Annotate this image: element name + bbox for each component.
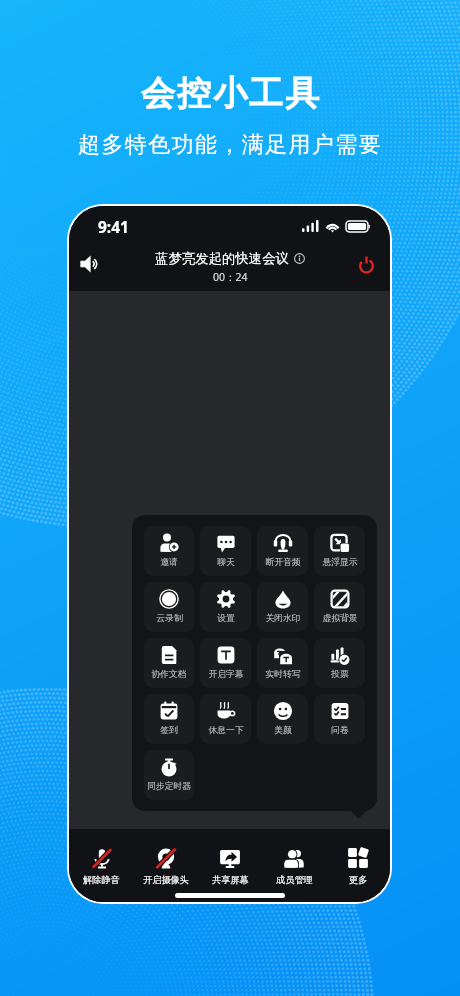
staticText: 关闭水印	[265, 613, 301, 624]
button[interactable]: Leave meeting	[351, 249, 381, 279]
staticText: 实时转写	[265, 669, 301, 680]
staticText: 蓝梦亮发起的快速会议	[155, 250, 289, 267]
staticText: 休息一下	[208, 725, 244, 736]
button[interactable]: 关闭水印	[257, 582, 308, 632]
staticText: 超多特色功能，满足用户需要	[78, 131, 383, 159]
staticText: 同步定时器	[147, 781, 191, 792]
button[interactable]: 实时转写	[257, 638, 308, 688]
button[interactable]: 问卷	[314, 694, 365, 744]
button[interactable]: 同步定时器	[144, 750, 194, 800]
button[interactable]: 邀请	[144, 526, 194, 576]
staticText: 问卷	[331, 725, 349, 736]
button[interactable]: 虚拟背景	[314, 582, 365, 632]
staticText: 设置	[217, 613, 235, 624]
staticText: 美颜	[274, 725, 292, 736]
button[interactable]: 成员管理	[262, 829, 326, 886]
staticText: 虚拟背景	[322, 613, 358, 624]
staticText: 更多	[349, 874, 368, 886]
button[interactable]: 美颜	[257, 694, 308, 744]
staticText: 投票	[331, 669, 349, 680]
staticText: 开启摄像头	[143, 874, 189, 886]
staticText: 9:41	[98, 216, 129, 237]
button[interactable]: 休息一下	[200, 694, 251, 744]
button[interactable]: 协作文档	[144, 638, 194, 688]
staticText: 云录制	[156, 613, 183, 624]
button[interactable]: 解除静音	[69, 829, 134, 886]
button[interactable]: 设置	[200, 582, 251, 632]
staticText: 签到	[160, 725, 178, 736]
staticText: 邀请	[160, 557, 178, 568]
button[interactable]: 签到	[144, 694, 194, 744]
staticText: 会控小工具	[140, 72, 320, 115]
button[interactable]: 云录制	[144, 582, 194, 632]
staticText: 聊天	[217, 557, 235, 568]
button[interactable]: 投票	[314, 638, 365, 688]
button[interactable]: 聊天	[200, 526, 251, 576]
button[interactable]: 开启摄像头	[134, 829, 198, 886]
button[interactable]: 更多	[326, 829, 390, 886]
button[interactable]: 开启字幕	[200, 638, 251, 688]
staticText: 开启字幕	[208, 669, 244, 680]
staticText: 解除静音	[83, 874, 120, 886]
button[interactable]: 共享屏幕	[198, 829, 262, 886]
staticText: 共享屏幕	[212, 874, 249, 886]
staticText: 悬浮显示	[322, 557, 358, 568]
staticText: 成员管理	[276, 874, 313, 886]
staticText: 协作文档	[151, 669, 187, 680]
staticText: 断开音频	[265, 557, 301, 568]
button[interactable]: 悬浮显示	[314, 526, 365, 576]
button[interactable]: Speaker	[74, 249, 104, 279]
staticText: 00：24	[213, 270, 248, 284]
button[interactable]: 断开音频	[257, 526, 308, 576]
